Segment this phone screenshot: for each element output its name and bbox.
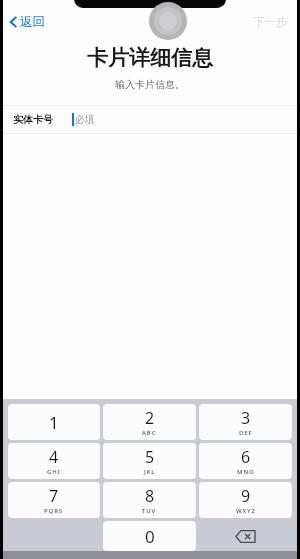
staticText: 必填 xyxy=(75,113,95,126)
button[interactable]: 9 xyxy=(199,482,292,518)
staticText: DEF xyxy=(239,429,253,437)
button[interactable]: 4 xyxy=(8,443,100,479)
button[interactable]: 下一步 xyxy=(244,10,297,34)
staticText: 7 xyxy=(49,485,59,507)
staticText: 下一步 xyxy=(253,15,288,29)
button[interactable]: 1 xyxy=(8,404,100,440)
staticText: 8 xyxy=(145,485,155,507)
button[interactable]: 7 xyxy=(8,482,100,518)
staticText: 9 xyxy=(241,485,251,507)
button[interactable]: 返回 xyxy=(3,10,55,34)
staticText: 6 xyxy=(241,446,251,468)
staticText: TUV xyxy=(142,507,157,515)
staticText: 0 xyxy=(145,525,155,548)
staticText: 返回 xyxy=(20,14,45,30)
staticText: MNO xyxy=(237,468,255,476)
button[interactable]: 6 xyxy=(199,443,292,479)
staticText: WXYZ xyxy=(236,507,256,515)
button[interactable]: 实体卡号 xyxy=(3,106,297,133)
button[interactable]: 8 xyxy=(103,482,196,518)
button[interactable]: 0 xyxy=(103,521,196,551)
staticText: GHI xyxy=(47,468,61,476)
staticText: 3 xyxy=(241,407,251,429)
staticText: PQRS xyxy=(44,507,64,515)
button[interactable]: Delete xyxy=(199,521,292,551)
staticText: 输入卡片信息。 xyxy=(3,78,297,91)
staticText: 卡片详细信息 xyxy=(3,45,297,71)
staticText: 实体卡号 xyxy=(13,113,53,126)
staticText: ABC xyxy=(142,429,157,437)
staticText: JKL xyxy=(144,468,156,476)
button[interactable]: 5 xyxy=(103,443,196,479)
staticText: 5 xyxy=(145,446,155,468)
staticText: 1 xyxy=(49,411,59,434)
button[interactable]: 3 xyxy=(199,404,292,440)
staticText: 4 xyxy=(49,446,59,468)
staticText: 2 xyxy=(145,407,155,429)
button[interactable]: 2 xyxy=(103,404,196,440)
